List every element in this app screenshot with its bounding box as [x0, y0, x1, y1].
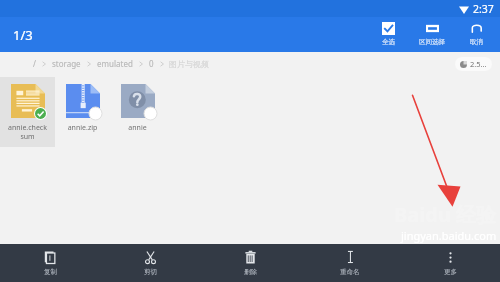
button[interactable]: Cancel	[454, 17, 498, 52]
staticText: 删除	[244, 268, 257, 276]
button[interactable]: 2.5…	[455, 57, 492, 71]
button[interactable]: annie.check sum	[0, 77, 55, 147]
staticText: 更多	[444, 268, 457, 276]
staticText: annie.check sum	[1, 123, 54, 141]
button[interactable]: Cut	[100, 244, 200, 282]
staticText: 1/3	[13, 26, 33, 44]
staticText: 2:37	[473, 2, 494, 16]
staticText: jingyan.baidu.com	[401, 228, 497, 243]
button[interactable]: 图片与视频	[167, 59, 211, 69]
button[interactable]: Delete	[200, 244, 300, 282]
button[interactable]: Range select	[410, 17, 454, 52]
button[interactable]: 1/3	[11, 24, 35, 46]
staticText: 剪切	[144, 268, 157, 276]
staticText: 全选	[382, 38, 395, 46]
button[interactable]: storage	[49, 58, 84, 69]
button[interactable]: /	[30, 58, 39, 69]
button[interactable]: More	[400, 244, 500, 282]
staticText: storage	[52, 58, 81, 69]
staticText: 区间选择	[419, 38, 445, 46]
button[interactable]: annie	[110, 77, 165, 139]
button[interactable]: 0	[146, 58, 157, 69]
staticText: Baidu 经验	[394, 201, 497, 228]
button[interactable]: annie.zip	[55, 77, 110, 139]
staticText: /	[33, 58, 36, 69]
staticText: 取消	[470, 38, 483, 46]
staticText: 图片与视频	[169, 59, 209, 69]
button[interactable]: Select all	[366, 17, 410, 52]
staticText: annie	[111, 123, 164, 133]
button[interactable]: emulated	[94, 58, 136, 69]
staticText: 2.5…	[470, 59, 487, 69]
button[interactable]: Copy	[0, 244, 100, 282]
staticText: emulated	[97, 58, 133, 69]
staticText: 复制	[44, 268, 57, 276]
button[interactable]: Rename	[300, 244, 400, 282]
staticText: annie.zip	[56, 123, 109, 133]
staticText: 重命名	[340, 268, 360, 276]
staticText: 0	[149, 58, 154, 69]
